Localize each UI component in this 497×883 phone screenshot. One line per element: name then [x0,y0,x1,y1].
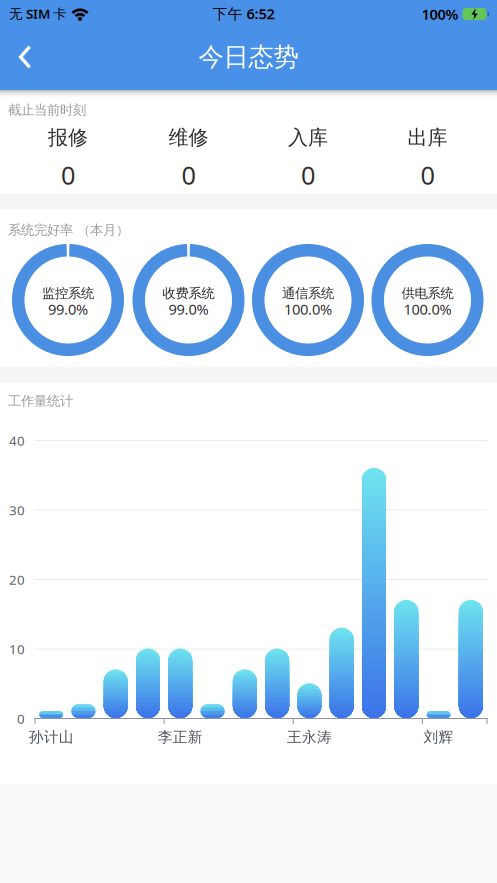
staticText: 下午 6:52 [212,4,274,23]
staticText: 李正新 [158,728,203,746]
staticText: 20 [9,571,25,588]
staticText: 出库 [407,125,447,150]
staticText: 100.0% [403,299,451,319]
staticText: 收费系统 [162,285,214,301]
staticText: 监控系统 [42,285,94,301]
staticText: 30 [9,501,25,519]
button[interactable] [3,35,47,79]
staticText: 通信系统 [282,285,334,301]
staticText: 0 [420,158,434,192]
staticText: 0 [301,158,315,192]
staticText: 0 [61,158,75,192]
staticText: 0 [17,710,25,727]
staticText: 维修 [168,125,208,150]
staticText: 工作量统计 [8,393,73,409]
staticText: 截止当前时刻 [8,102,86,118]
staticText: 40 [9,432,25,449]
staticText: 王永涛 [287,728,332,746]
staticText: 供电系统 [401,285,453,301]
staticText: 刘辉 [424,728,454,746]
staticText: 100% [421,4,458,24]
staticText: 今日态势 [198,41,298,72]
staticText: 100.0% [284,299,332,319]
staticText: 报修 [48,125,88,150]
staticText: 99.0% [168,299,208,319]
staticText: 99.0% [48,299,88,319]
staticText: 入库 [288,125,328,150]
staticText: 10 [9,640,25,658]
staticText: 孙计山 [29,728,74,746]
staticText: 系统完好率 （本月） [8,222,129,238]
staticText: 无 SIM 卡 [9,5,66,22]
staticText: 0 [181,158,195,192]
